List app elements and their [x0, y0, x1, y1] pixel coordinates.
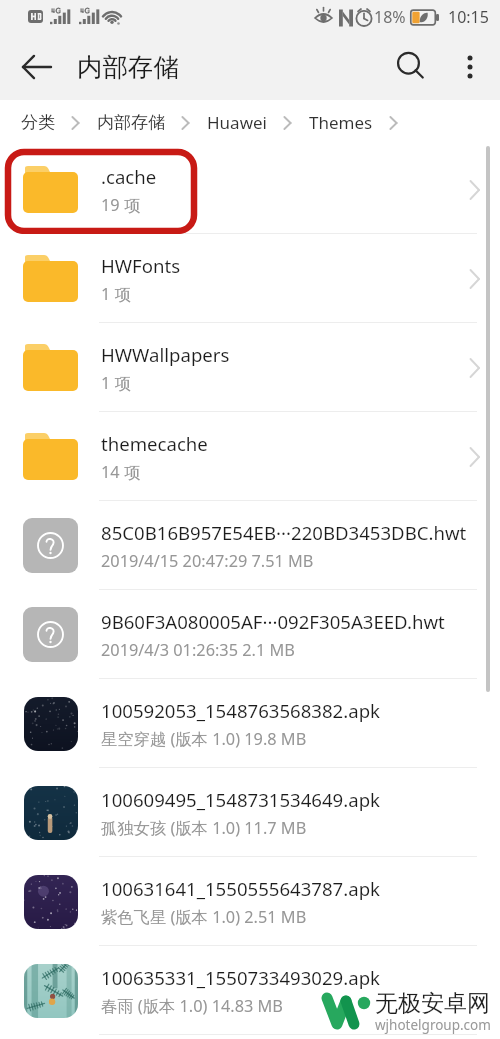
staticText: 内部存储: [77, 51, 179, 83]
staticText: themecache: [101, 431, 208, 456]
button[interactable]: Huawei: [207, 111, 267, 134]
button[interactable]: HWFonts: [0, 234, 500, 323]
staticText: HWWallpapers: [101, 342, 230, 367]
staticText: 100592053_1548763568382.apk: [101, 698, 381, 723]
button[interactable]: 9B60F3A080005AF···092F305A3EED.hwt: [0, 590, 500, 679]
staticText: 85C0B16B957E54EB···220BD3453DBC.hwt: [101, 520, 467, 545]
staticText: 2019/4/15 20:47:29 7.51 MB: [101, 550, 314, 572]
staticText: 1 项: [101, 283, 131, 305]
staticText: Huawei: [207, 111, 267, 134]
button[interactable]: HWWallpapers: [0, 323, 500, 412]
staticText: 10:15: [448, 6, 489, 28]
button[interactable]: Back: [6, 36, 68, 98]
button[interactable]: 内部存储: [97, 112, 165, 133]
button[interactable]: 85C0B16B957E54EB···220BD3453DBC.hwt: [0, 501, 500, 590]
staticText: 1 项: [101, 372, 131, 394]
button[interactable]: .cache: [0, 145, 500, 234]
button[interactable]: 100592053_1548763568382.apk: [0, 679, 500, 768]
button[interactable]: More options: [442, 39, 498, 95]
button[interactable]: 100631641_1550555643787.apk: [0, 857, 500, 946]
button[interactable]: Themes: [309, 111, 373, 134]
staticText: 分类: [21, 112, 55, 133]
button[interactable]: themecache: [0, 412, 500, 501]
staticText: 100609495_1548731534649.apk: [101, 787, 381, 812]
staticText: 无极安卓网: [375, 989, 490, 1018]
staticText: Themes: [309, 111, 373, 134]
staticText: 100631641_1550555643787.apk: [101, 876, 381, 901]
staticText: 14 项: [101, 461, 141, 483]
button[interactable]: Search: [383, 39, 439, 95]
staticText: 内部存储: [97, 112, 165, 133]
staticText: 紫色飞星 (版本 1.0) 2.51 MB: [101, 906, 307, 928]
staticText: 星空穿越 (版本 1.0) 19.8 MB: [101, 728, 307, 750]
staticText: 19 项: [101, 194, 141, 216]
button[interactable]: 100635331_1550733493029.apk: [0, 946, 500, 1035]
staticText: 春雨 (版本 1.0) 14.83 MB: [101, 995, 283, 1017]
staticText: 100635331_1550733493029.apk: [101, 965, 381, 990]
staticText: .cache: [101, 164, 157, 189]
button[interactable]: 100609495_1548731534649.apk: [0, 768, 500, 857]
staticText: wjhotelgroup.com: [375, 1016, 491, 1034]
staticText: 孤独女孩 (版本 1.0) 11.7 MB: [101, 817, 307, 839]
staticText: HWFonts: [101, 253, 181, 278]
button[interactable]: 分类: [21, 112, 55, 133]
staticText: 18%: [374, 6, 406, 28]
staticText: 9B60F3A080005AF···092F305A3EED.hwt: [101, 609, 445, 634]
staticText: 2019/4/3 01:26:35 2.1 MB: [101, 639, 295, 661]
